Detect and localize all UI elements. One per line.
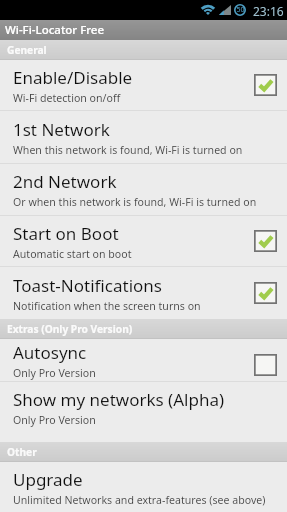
button[interactable]: Toast-Notifications checkbox, checked xyxy=(254,282,277,304)
staticText: 2nd Network xyxy=(13,170,117,193)
staticText: Or when this network is found, Wi-Fi is … xyxy=(13,195,257,209)
staticText: 50 xyxy=(236,5,245,15)
staticText: Show my networks (Alpha) xyxy=(13,388,225,411)
staticText: Wi-Fi-Locator Free xyxy=(5,22,105,38)
button[interactable]: Autosync xyxy=(0,339,287,381)
button[interactable]: Enable/Disable xyxy=(0,60,287,110)
staticText: Start on Boot xyxy=(13,222,119,245)
staticText: 1st Network xyxy=(13,118,110,141)
button[interactable]: Toast-Notifications xyxy=(0,267,287,319)
staticText: Extras (Only Pro Version) xyxy=(7,322,133,336)
staticText: Notification when the screen turns on xyxy=(13,299,201,313)
staticText: Wi-Fi detection on/off xyxy=(13,91,121,105)
staticText: Only Pro Version xyxy=(13,413,96,427)
staticText: Unlimited Networks and extra-features (s… xyxy=(13,493,266,507)
staticText: Enable/Disable xyxy=(13,66,133,89)
button[interactable]: Start on Boot xyxy=(0,216,287,266)
staticText: Automatic start on boot xyxy=(13,247,132,261)
staticText: 23:16 xyxy=(253,3,284,19)
button[interactable]: 2nd Network xyxy=(0,164,287,215)
button[interactable]: 1st Network xyxy=(0,111,287,163)
staticText: Toast-Notifications xyxy=(13,274,162,297)
button[interactable]: Upgrade xyxy=(0,462,287,512)
button[interactable]: Start on Boot checkbox, checked xyxy=(254,230,277,252)
staticText: Other xyxy=(7,445,37,459)
staticText: General xyxy=(7,43,47,57)
button[interactable]: Autosync checkbox, not checked xyxy=(254,354,277,376)
staticText: When this network is found, Wi-Fi is tur… xyxy=(13,143,243,157)
button[interactable]: Enable/Disable checkbox, checked xyxy=(254,74,277,96)
staticText: Autosync xyxy=(13,341,87,364)
staticText: Only Pro Version xyxy=(13,366,96,380)
button[interactable]: Show my networks (Alpha) xyxy=(0,382,287,432)
staticText: Upgrade xyxy=(13,468,83,491)
